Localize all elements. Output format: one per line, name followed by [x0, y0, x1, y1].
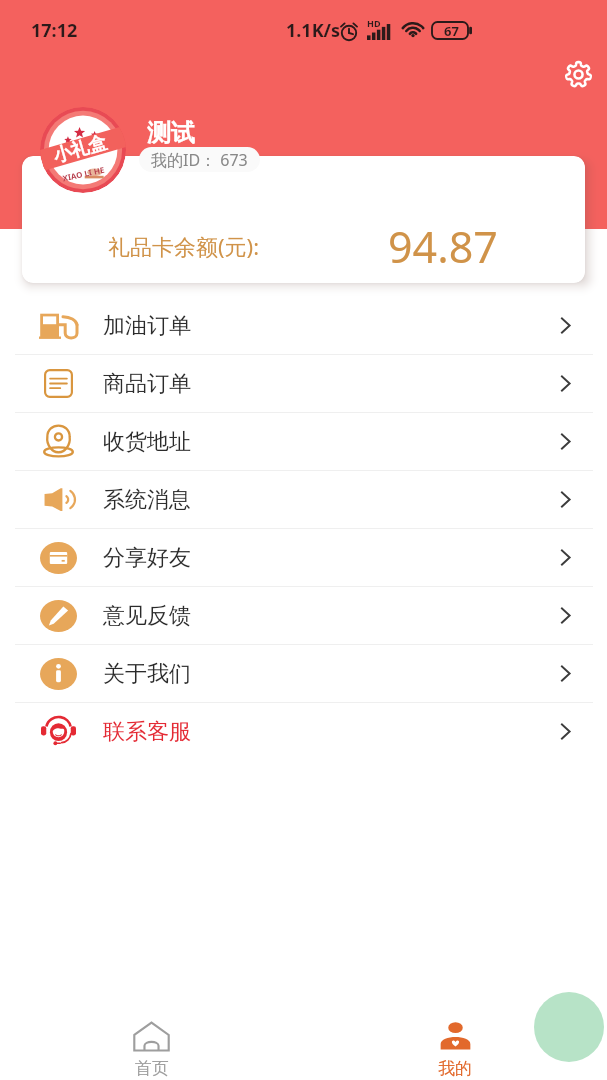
- staticText: 1.1K/s: [286, 18, 341, 43]
- button[interactable]: 商品订单: [0, 355, 607, 412]
- button[interactable]: 收货地址: [0, 413, 607, 470]
- button[interactable]: 意见反馈: [0, 587, 607, 644]
- staticText: XIAO LI HE: [61, 164, 106, 183]
- button[interactable]: 分享好友: [0, 529, 607, 586]
- button[interactable]: 关于我们: [0, 645, 607, 702]
- button[interactable]: Settings: [558, 54, 598, 94]
- staticText: 收货地址: [103, 428, 191, 456]
- button[interactable]: 我的: [303, 1012, 607, 1080]
- staticText: 17:12: [31, 18, 78, 43]
- button[interactable]: 首页: [0, 1012, 303, 1080]
- button[interactable]: 系统消息: [0, 471, 607, 528]
- button[interactable]: 加油订单: [0, 297, 607, 354]
- staticText: 分享好友: [103, 544, 191, 572]
- staticText: 测试: [147, 118, 195, 148]
- staticText: 关于我们: [103, 660, 191, 688]
- staticText: 67: [444, 22, 459, 39]
- staticText: 加油订单: [103, 312, 191, 340]
- staticText: 商品订单: [103, 370, 191, 398]
- button[interactable]: 联系客服: [0, 703, 607, 760]
- staticText: 联系客服: [103, 718, 191, 746]
- staticText: 我的ID： 673: [151, 149, 248, 171]
- button[interactable]: 礼品卡余额(元):: [22, 156, 585, 283]
- staticText: 我的: [438, 1058, 472, 1079]
- button[interactable]: Assistant: [534, 992, 604, 1062]
- staticText: 系统消息: [103, 486, 191, 514]
- staticText: 小礼盒: [51, 131, 109, 168]
- staticText: 礼品卡余额(元):: [108, 231, 260, 261]
- staticText: HD: [367, 17, 381, 29]
- staticText: 首页: [135, 1058, 169, 1079]
- staticText: 94.87: [388, 217, 498, 276]
- staticText: 意见反馈: [103, 602, 191, 630]
- button[interactable]: Avatar: [40, 107, 126, 193]
